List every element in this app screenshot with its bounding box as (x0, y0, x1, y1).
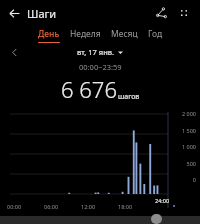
staticText: 06:00 (44, 203, 59, 210)
staticText: 00:00−23:59 (79, 62, 122, 72)
button[interactable]: Предыдущий день (6, 44, 22, 60)
button[interactable]: Год (148, 28, 163, 43)
staticText: 24:00 (155, 197, 170, 204)
staticText: шагов (118, 92, 140, 102)
button[interactable]: Месяц (111, 28, 138, 43)
button[interactable]: Неделя (70, 28, 101, 43)
staticText: 18:00 (118, 203, 133, 210)
staticText: 6 676 (61, 74, 117, 104)
staticText: 2 000 (170, 110, 196, 117)
button[interactable]: Кнопка (151, 214, 162, 224)
staticText: Месяц (111, 28, 138, 40)
staticText: 12:00 (81, 203, 96, 210)
staticText: 1 000 (170, 143, 196, 150)
button[interactable]: Ещё (175, 4, 193, 22)
staticText: 500 (170, 160, 196, 167)
staticText: Год (148, 28, 163, 40)
staticText: Шаги (27, 6, 57, 21)
button[interactable]: День (38, 28, 60, 43)
staticText: 1 500 (170, 127, 196, 134)
staticText: 0 (170, 176, 196, 183)
staticText: вт, 17 янв. (77, 47, 115, 57)
staticText: Неделя (70, 28, 101, 40)
staticText: День (38, 28, 60, 40)
button[interactable]: Назад (5, 4, 23, 22)
button[interactable]: Поделиться (152, 4, 170, 22)
staticText: 00:00 (7, 203, 22, 210)
